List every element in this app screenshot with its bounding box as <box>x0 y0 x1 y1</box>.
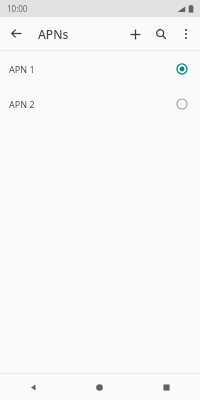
button[interactable]: Home <box>66 374 133 400</box>
button[interactable]: Back <box>4 21 29 46</box>
button[interactable]: Search <box>148 21 174 47</box>
button[interactable]: More options <box>174 22 198 46</box>
staticText: APN 1 <box>9 63 173 75</box>
staticText: 10:00 <box>7 3 28 14</box>
button[interactable]: Recent apps <box>133 374 200 400</box>
button[interactable]: Add <box>122 21 148 47</box>
button[interactable]: APN 2 <box>0 86 200 121</box>
button[interactable]: Back <box>0 374 66 400</box>
staticText: APNs <box>38 26 69 42</box>
button[interactable]: APN 1 <box>0 51 200 86</box>
staticText: APN 2 <box>9 98 173 110</box>
